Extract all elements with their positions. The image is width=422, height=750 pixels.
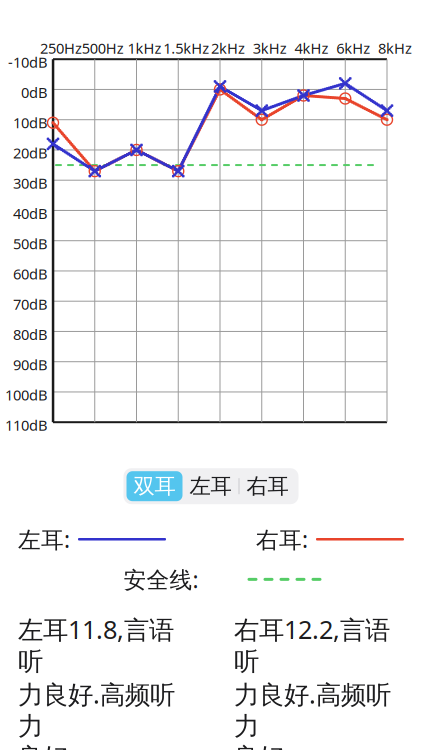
staticText: 500Hz — [82, 38, 124, 58]
staticText: 右耳: — [256, 524, 308, 554]
staticText: 左耳: — [18, 524, 70, 554]
staticText: 3kHz — [253, 38, 287, 58]
staticText: 1.5kHz — [163, 38, 209, 58]
staticText: 90dB — [13, 355, 48, 374]
staticText: 100dB — [5, 385, 48, 404]
staticText: 右耳 — [246, 473, 288, 499]
staticText: 左耳11.8,言语听 力良好.高频听力 良好 — [18, 612, 175, 750]
staticText: 110dB — [5, 415, 48, 435]
staticText: 70dB — [13, 294, 48, 314]
staticText: 0dB — [21, 82, 48, 102]
staticText: 安全线: — [123, 564, 198, 594]
staticText: 4kHz — [294, 38, 328, 58]
staticText: 6kHz — [336, 38, 370, 58]
staticText: 250Hz — [40, 38, 82, 58]
staticText: 8kHz — [378, 38, 412, 58]
staticText: 40dB — [13, 203, 48, 223]
staticText: 双耳 — [133, 473, 175, 499]
button[interactable]: 右耳 — [239, 471, 295, 501]
staticText: 50dB — [13, 234, 48, 253]
staticText: 60dB — [13, 264, 48, 283]
staticText: 10dB — [13, 113, 48, 132]
staticText: 1kHz — [127, 38, 161, 58]
staticText: 右耳12.2,言语听 力良好.高频听力 良好 — [234, 612, 391, 750]
button[interactable]: 双耳 — [126, 471, 182, 501]
staticText: 2kHz — [211, 38, 245, 58]
staticText: 左耳 — [189, 473, 231, 499]
staticText: 20dB — [13, 143, 48, 162]
staticText: 30dB — [13, 173, 48, 193]
staticText: -10dB — [8, 52, 48, 72]
button[interactable]: 左耳 — [182, 471, 238, 501]
staticText: 80dB — [13, 324, 48, 344]
